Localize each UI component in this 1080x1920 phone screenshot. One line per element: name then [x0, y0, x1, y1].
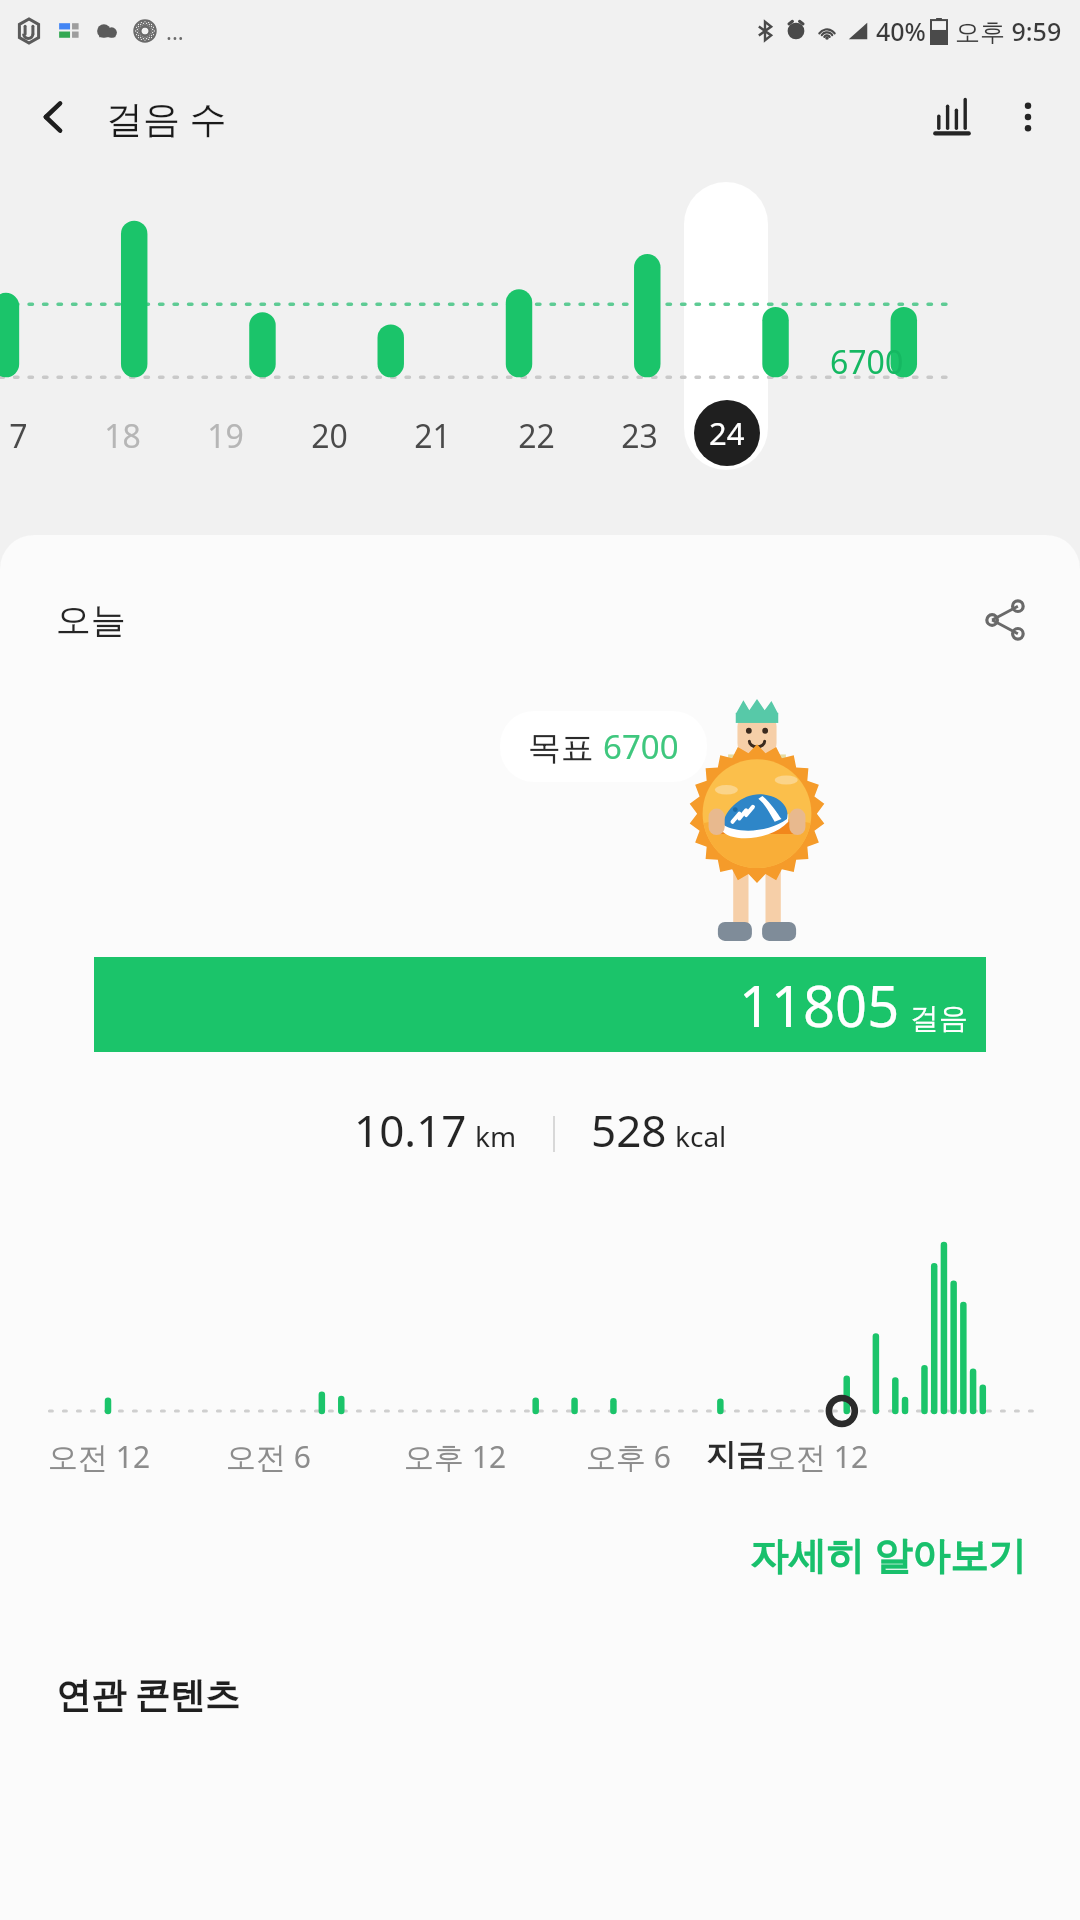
- staticText: 오후 9:59: [955, 14, 1062, 48]
- button[interactable]: 11805: [94, 957, 986, 1052]
- button[interactable]: Back: [22, 85, 86, 149]
- staticText: 24: [709, 412, 745, 454]
- button[interactable]: More options: [990, 79, 1066, 155]
- staticText: 18: [104, 414, 141, 458]
- staticText: 걸음 수: [106, 92, 227, 143]
- staticText: 오늘: [56, 598, 126, 642]
- staticText: 오전 12: [48, 1436, 151, 1477]
- button[interactable]: 자세히 알아보기: [744, 1522, 1032, 1586]
- staticText: 11805: [739, 967, 900, 1043]
- staticText: 10.17: [354, 1100, 467, 1160]
- staticText: 6700: [830, 340, 904, 384]
- staticText: 21: [414, 414, 451, 458]
- staticText: 오후 12: [404, 1436, 507, 1477]
- staticText: 20: [311, 414, 348, 458]
- staticText: 자세히 알아보기: [750, 1528, 1026, 1580]
- staticText: 40%: [876, 14, 926, 48]
- staticText: 지금: [706, 1436, 766, 1474]
- staticText: 528: [591, 1100, 667, 1160]
- staticText: 오전 6: [226, 1436, 311, 1477]
- button[interactable]: Share: [968, 583, 1042, 657]
- button[interactable]: [684, 182, 768, 470]
- staticText: 6700: [603, 724, 679, 769]
- staticText: 오후 6: [586, 1436, 671, 1477]
- staticText: 연관 콘텐츠: [56, 1670, 241, 1718]
- staticText: 오전 12: [766, 1436, 869, 1477]
- button[interactable]: Chart: [914, 79, 990, 155]
- staticText: ...: [166, 16, 184, 46]
- button[interactable]: 24: [694, 400, 760, 466]
- staticText: 걸음: [910, 1000, 968, 1037]
- staticText: kcal: [675, 1117, 727, 1155]
- staticText: 7: [9, 414, 28, 458]
- staticText: 19: [207, 414, 244, 458]
- staticText: km: [475, 1117, 517, 1155]
- staticText: 22: [518, 414, 555, 458]
- staticText: 목표: [528, 724, 603, 769]
- staticText: 23: [621, 414, 658, 458]
